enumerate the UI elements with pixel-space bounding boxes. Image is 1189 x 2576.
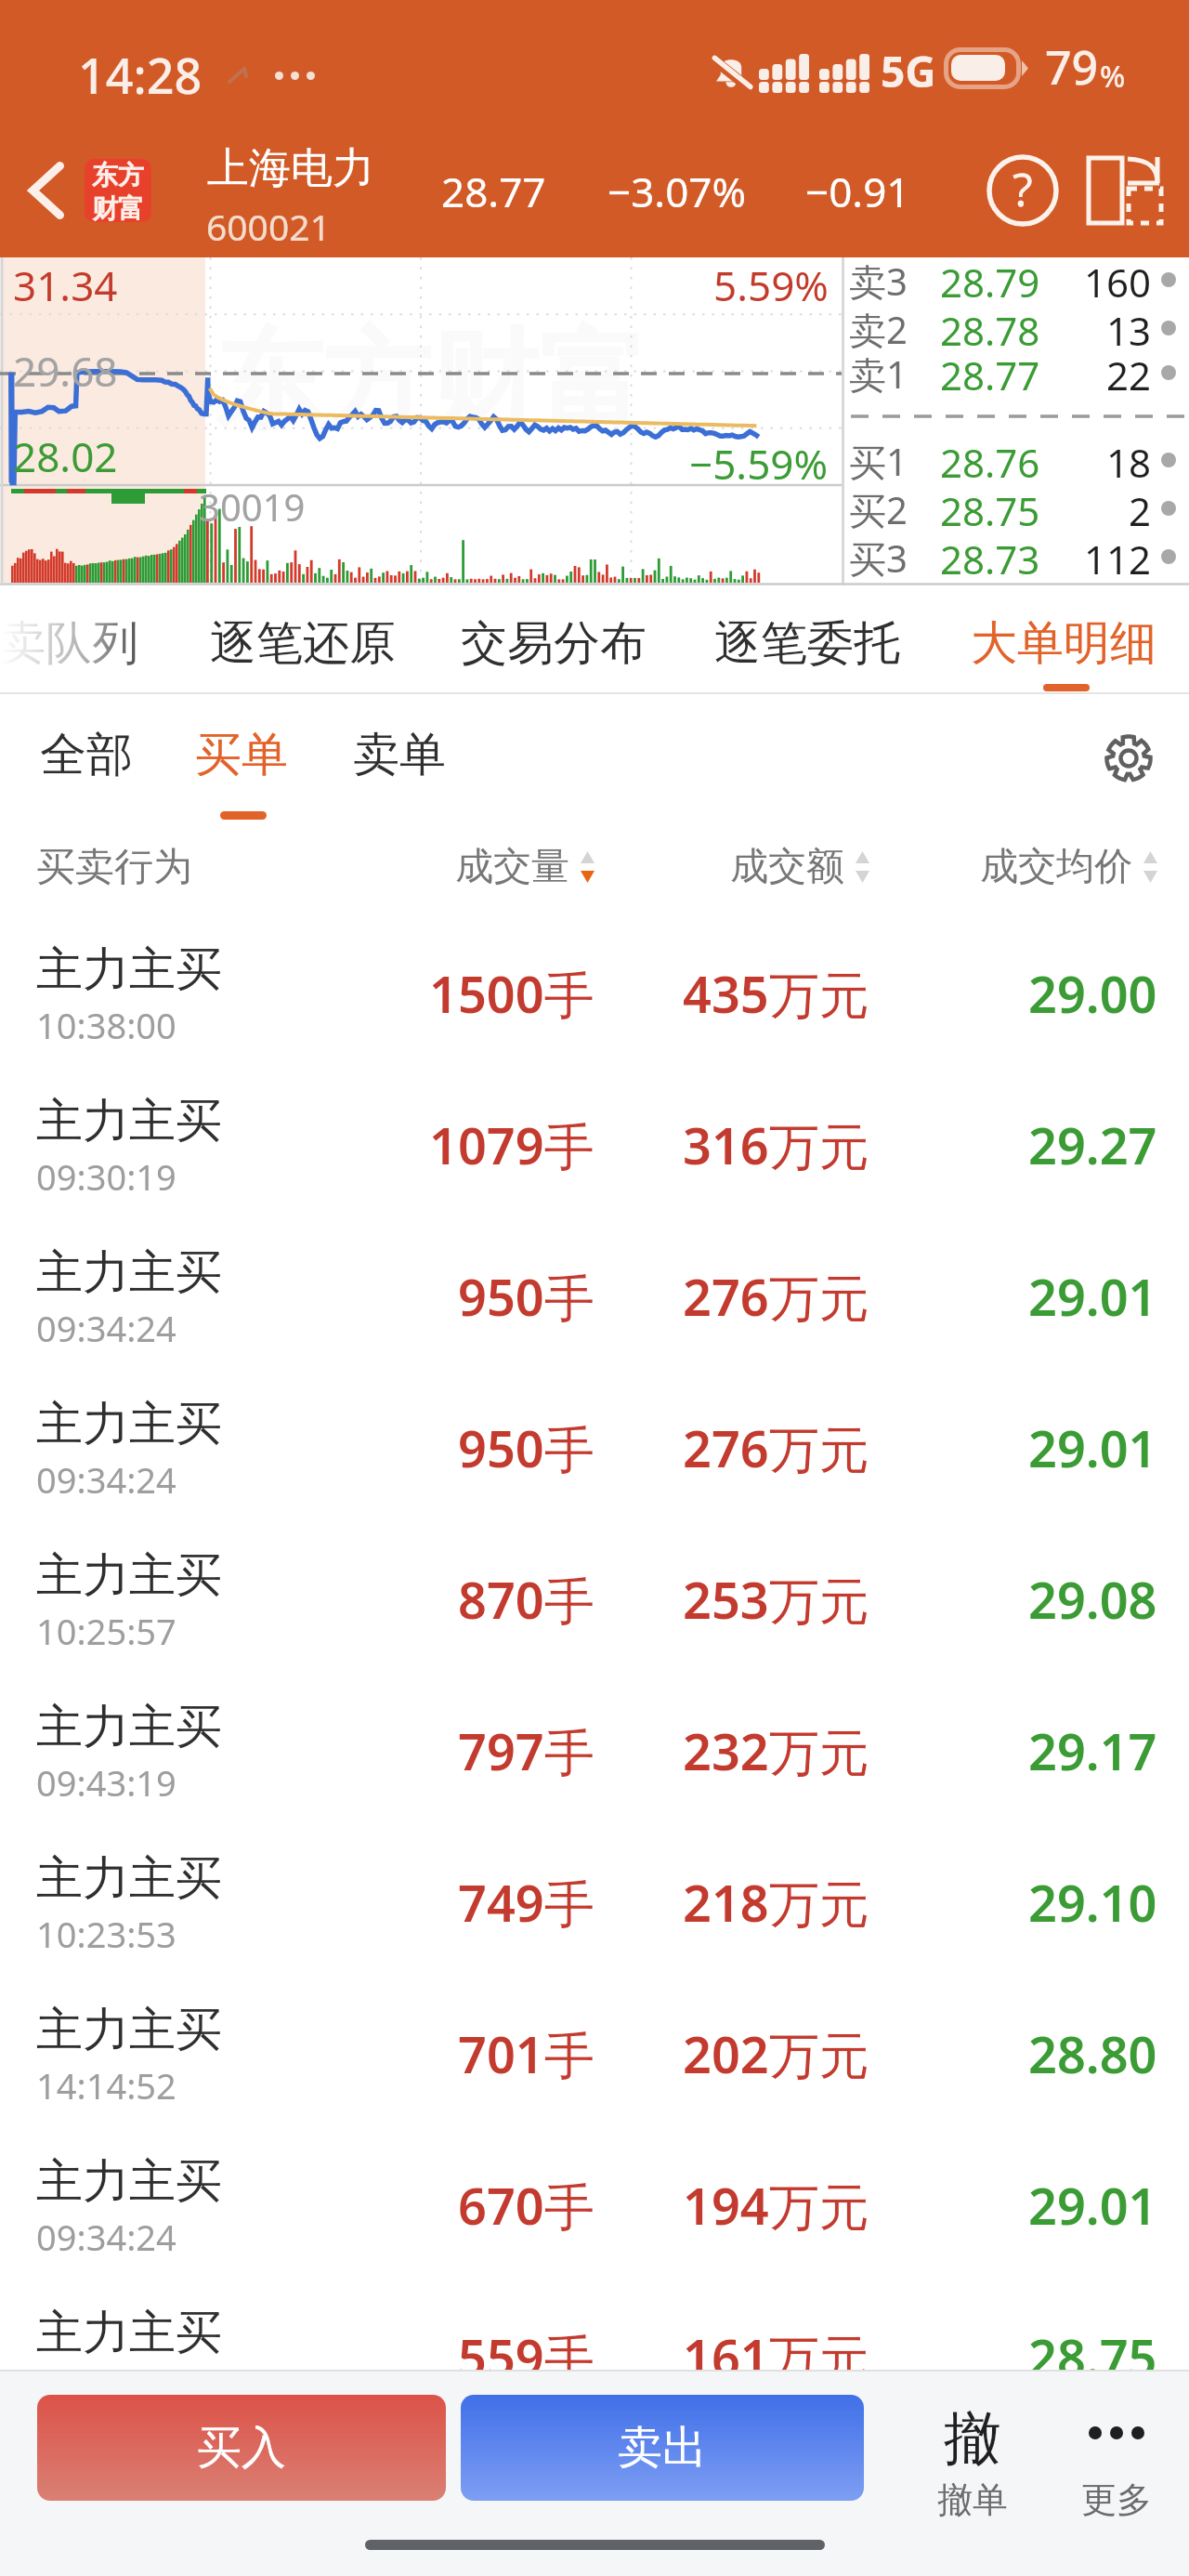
- staticText: 29.01: [1028, 1262, 1157, 1331]
- staticText: 218万元: [683, 1868, 869, 1937]
- button[interactable]: 横屏切换: [1078, 144, 1170, 237]
- staticText: 大单明细: [971, 614, 1156, 673]
- staticText: 29.10: [1028, 1868, 1157, 1937]
- staticText: 435万元: [683, 959, 869, 1028]
- staticText: 更多: [1081, 2477, 1152, 2522]
- staticText: 232万元: [683, 1716, 869, 1785]
- button[interactable]: 主力主买: [0, 2280, 1189, 2431]
- staticText: 撤单: [937, 2477, 1008, 2522]
- staticText: 22: [1106, 348, 1152, 397]
- button[interactable]: 交易分布: [438, 585, 669, 694]
- staticText: 29.68: [13, 343, 118, 399]
- staticText: 买卖行为: [36, 843, 192, 892]
- staticText: 10:38:00: [36, 1001, 176, 1049]
- button[interactable]: 卖2: [842, 304, 1189, 352]
- button[interactable]: 成交额: [591, 821, 869, 913]
- button[interactable]: 设置: [1078, 707, 1180, 809]
- staticText: 316万元: [683, 1111, 869, 1179]
- staticText: 160: [1084, 256, 1152, 304]
- staticText: 1500手: [429, 959, 594, 1028]
- staticText: 13: [1106, 304, 1152, 352]
- staticText: 卖1: [849, 348, 908, 397]
- staticText: 202万元: [683, 2019, 869, 2088]
- staticText: 主力主买: [36, 2001, 222, 2059]
- staticText: 701手: [458, 2019, 594, 2088]
- button[interactable]: 买2: [842, 484, 1189, 532]
- button[interactable]: 主力主买: [0, 1371, 1189, 1522]
- staticText: 28.79: [940, 256, 1040, 304]
- staticText: 161万元: [683, 2322, 869, 2391]
- button[interactable]: 主力主买: [0, 1522, 1189, 1674]
- staticText: 14:14:52: [36, 2061, 176, 2109]
- button[interactable]: 大单明细: [948, 585, 1179, 694]
- staticText: 28.02: [13, 428, 118, 484]
- button[interactable]: 买3: [842, 532, 1189, 581]
- staticText: 276万元: [683, 1262, 869, 1331]
- staticText: 全部: [40, 726, 133, 784]
- staticText: 28.73: [940, 532, 1040, 581]
- staticText: 29.08: [1028, 1565, 1157, 1634]
- button[interactable]: 主力主买: [0, 1068, 1189, 1219]
- staticText: 797手: [458, 1716, 594, 1785]
- staticText: 28.77: [940, 348, 1040, 397]
- button[interactable]: 买单: [176, 708, 307, 801]
- staticText: 交易分布: [461, 614, 647, 673]
- button[interactable]: 成交量: [316, 821, 594, 913]
- staticText: 09:43:19: [36, 1758, 176, 1807]
- staticText: 29.01: [1028, 2171, 1157, 2240]
- button[interactable]: 返回: [4, 135, 89, 246]
- staticText: 10:23:53: [36, 1910, 176, 1958]
- staticText: 09:34:24: [36, 2213, 176, 2261]
- button[interactable]: 卖1: [842, 348, 1189, 397]
- button[interactable]: 卖单: [334, 708, 464, 801]
- staticText: 主力主买: [36, 1243, 222, 1302]
- staticText: %: [1100, 56, 1126, 97]
- staticText: 卖单: [353, 726, 446, 784]
- staticText: 东方: [92, 159, 144, 191]
- staticText: 买单: [195, 726, 288, 784]
- staticText: ?: [1013, 157, 1033, 220]
- button[interactable]: 卖3: [842, 256, 1189, 304]
- button[interactable]: 主力主买: [0, 1674, 1189, 1825]
- staticText: 5.59%: [713, 257, 829, 313]
- staticText: 逐笔委托: [714, 614, 900, 673]
- button[interactable]: 买入: [37, 2395, 446, 2501]
- staticText: 600021: [206, 202, 331, 251]
- staticText: 主力主买: [36, 1092, 222, 1150]
- button[interactable]: 卖队列: [0, 585, 160, 694]
- staticText: 28.75: [1028, 2322, 1157, 2391]
- button[interactable]: 帮助: [976, 144, 1069, 237]
- button[interactable]: 主力主买: [0, 1825, 1189, 1977]
- button[interactable]: 主力主买: [0, 1219, 1189, 1371]
- button[interactable]: 撤: [898, 2381, 1047, 2520]
- staticText: 29.00: [1028, 959, 1157, 1028]
- staticText: 09:34:24: [36, 1304, 176, 1352]
- button[interactable]: 逐笔还原: [188, 585, 418, 694]
- staticText: 主力主买: [36, 1546, 222, 1605]
- staticText: 79: [1045, 35, 1099, 99]
- button[interactable]: 买1: [842, 436, 1189, 484]
- staticText: 2: [1129, 484, 1152, 532]
- staticText: 28.76: [940, 436, 1040, 484]
- button[interactable]: 卖出: [461, 2395, 864, 2501]
- staticText: 东方财富: [216, 313, 647, 449]
- staticText: 主力主买: [36, 1698, 222, 1756]
- staticText: 财富: [92, 192, 144, 222]
- staticText: 14:28: [78, 42, 203, 108]
- button[interactable]: 全部: [21, 708, 151, 801]
- button[interactable]: 成交均价: [879, 821, 1157, 913]
- button[interactable]: 主力主买: [0, 2128, 1189, 2280]
- button[interactable]: 主力主买: [0, 1977, 1189, 2128]
- staticText: 950手: [458, 1262, 594, 1331]
- staticText: 29.01: [1028, 1413, 1157, 1482]
- button[interactable]: 逐笔委托: [692, 585, 922, 694]
- staticText: 上海电力: [207, 142, 374, 195]
- button[interactable]: 更多: [1042, 2381, 1189, 2520]
- staticText: 5G: [881, 42, 936, 100]
- button[interactable]: 主力主买: [0, 916, 1189, 1068]
- staticText: 18: [1106, 436, 1152, 484]
- staticText: 28.80: [1028, 2019, 1157, 2088]
- staticText: 成交均价: [980, 843, 1132, 891]
- staticText: −3.07%: [608, 164, 747, 219]
- staticText: 194万元: [683, 2171, 869, 2240]
